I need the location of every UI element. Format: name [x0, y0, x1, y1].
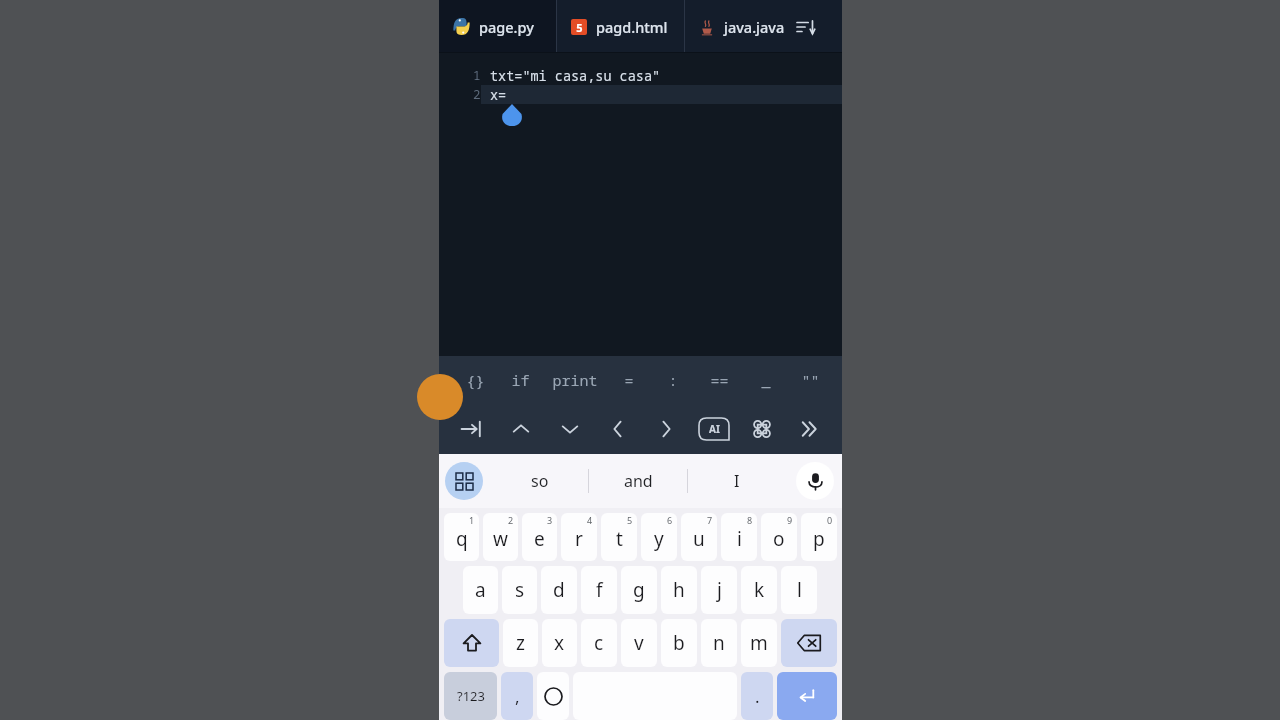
button[interactable]: {}: [453, 356, 498, 404]
staticText: 4: [587, 514, 593, 526]
button[interactable]: m: [741, 619, 777, 667]
staticText: 2: [473, 86, 481, 103]
staticText: AI: [709, 422, 720, 436]
button[interactable]: java.java: [685, 0, 842, 53]
staticText: q: [456, 526, 468, 552]
staticText: 5: [576, 20, 583, 35]
staticText: y: [654, 526, 664, 552]
button[interactable]: Keyboard options: [445, 462, 483, 500]
staticText: s: [515, 577, 525, 603]
button[interactable]: Sort tabs: [793, 14, 819, 40]
staticText: pagd.html: [596, 17, 668, 37]
button[interactable]: x: [542, 619, 577, 667]
button[interactable]: Shift: [444, 619, 499, 667]
button[interactable]: Period: [741, 672, 773, 720]
button[interactable]: Enter: [777, 672, 837, 720]
staticText: e: [534, 526, 545, 552]
button[interactable]: d: [541, 566, 577, 614]
staticText: and: [624, 470, 653, 492]
button[interactable]: if: [498, 356, 543, 404]
staticText: 7: [707, 514, 713, 526]
staticText: 8: [747, 514, 753, 526]
button[interactable]: b: [661, 619, 697, 667]
staticText: ?123: [457, 687, 485, 705]
staticText: m: [750, 630, 768, 656]
button[interactable]: w: [483, 513, 518, 561]
button[interactable]: I: [688, 461, 786, 501]
button[interactable]: More: [786, 404, 834, 454]
button[interactable]: so: [491, 461, 588, 501]
staticText: h: [673, 577, 685, 603]
staticText: :: [668, 370, 678, 390]
button[interactable]: c: [581, 619, 617, 667]
staticText: 1: [473, 67, 481, 84]
button[interactable]: u: [681, 513, 717, 561]
staticText: t: [616, 526, 623, 552]
staticText: u: [693, 526, 705, 552]
staticText: g: [633, 577, 645, 603]
staticText: =: [624, 370, 634, 390]
button[interactable]: o: [761, 513, 797, 561]
staticText: r: [575, 526, 583, 552]
button[interactable]: and: [589, 461, 687, 501]
button[interactable]: _: [744, 356, 788, 404]
button[interactable]: e: [522, 513, 557, 561]
button[interactable]: l: [781, 566, 817, 614]
button[interactable]: r: [561, 513, 597, 561]
button[interactable]: Tab: [447, 404, 496, 454]
button[interactable]: z: [503, 619, 538, 667]
button[interactable]: Backspace: [781, 619, 837, 667]
staticText: i: [737, 526, 742, 552]
staticText: o: [773, 526, 785, 552]
button[interactable]: Move up: [496, 404, 545, 454]
staticText: "": [801, 370, 820, 390]
button[interactable]: Move left: [594, 404, 642, 454]
button[interactable]: "": [788, 356, 832, 404]
button[interactable]: print: [543, 356, 607, 404]
button[interactable]: ==: [695, 356, 744, 404]
staticText: j: [717, 577, 722, 603]
staticText: b: [673, 630, 685, 656]
button[interactable]: t: [601, 513, 637, 561]
button[interactable]: Move down: [545, 404, 594, 454]
button[interactable]: =: [607, 356, 651, 404]
button[interactable]: y: [641, 513, 677, 561]
button[interactable]: Emoji: [537, 672, 569, 720]
staticText: _: [761, 370, 771, 390]
staticText: java.java: [724, 17, 785, 37]
button[interactable]: Voice input: [796, 462, 834, 500]
button[interactable]: v: [621, 619, 657, 667]
button[interactable]: Move right: [642, 404, 690, 454]
button[interactable]: q: [444, 513, 479, 561]
staticText: ==: [710, 370, 729, 390]
button[interactable]: ?123: [444, 672, 497, 720]
button[interactable]: p: [801, 513, 837, 561]
staticText: I: [734, 470, 740, 492]
button[interactable]: a: [463, 566, 498, 614]
button[interactable]: Command: [738, 404, 786, 454]
button[interactable]: h: [661, 566, 697, 614]
button[interactable]: k: [741, 566, 777, 614]
button[interactable]: n: [701, 619, 737, 667]
staticText: f: [596, 577, 603, 603]
staticText: x=: [490, 86, 507, 104]
staticText: v: [634, 630, 644, 656]
staticText: 6: [667, 514, 673, 526]
button[interactable]: f: [581, 566, 617, 614]
staticText: .: [755, 685, 760, 708]
button[interactable]: page.py: [439, 0, 556, 53]
button[interactable]: :: [651, 356, 695, 404]
button[interactable]: i: [721, 513, 757, 561]
button[interactable]: s: [502, 566, 537, 614]
staticText: c: [594, 630, 604, 656]
staticText: a: [475, 577, 486, 603]
button[interactable]: g: [621, 566, 657, 614]
button[interactable]: j: [701, 566, 737, 614]
button[interactable]: Comma: [501, 672, 533, 720]
button[interactable]: 5: [557, 0, 684, 53]
button[interactable]: AI assistant: [690, 404, 738, 454]
staticText: ,: [515, 685, 520, 708]
staticText: l: [797, 577, 802, 603]
staticText: d: [553, 577, 565, 603]
